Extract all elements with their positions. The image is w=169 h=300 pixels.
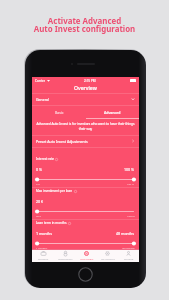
staticText: Advanced bbox=[104, 110, 121, 115]
button[interactable]: funding bbox=[118, 249, 139, 262]
button[interactable]: General bbox=[32, 93, 139, 105]
staticText: 100 % bbox=[124, 167, 135, 172]
staticText: Overview bbox=[74, 85, 97, 92]
button[interactable]: Auto Invest bbox=[76, 249, 97, 262]
staticText: Basic bbox=[55, 110, 64, 115]
staticText: investments bbox=[58, 257, 73, 260]
staticText: 100 % bbox=[127, 182, 135, 185]
staticText: 2:15 PM bbox=[84, 79, 96, 83]
staticText: my account bbox=[101, 257, 115, 260]
staticText: funding bbox=[124, 257, 134, 260]
staticText: 1000 € bbox=[127, 214, 135, 217]
staticText: Interest rate bbox=[36, 157, 54, 161]
staticText: Max investment per loan bbox=[36, 189, 73, 193]
staticText: Carrier bbox=[35, 79, 46, 83]
staticText: 20 € bbox=[36, 214, 41, 217]
staticText: 48 months bbox=[122, 246, 135, 249]
staticText: 48 months bbox=[116, 231, 135, 236]
button[interactable]: Basic bbox=[32, 105, 86, 119]
staticText: 0 % bbox=[36, 182, 41, 185]
staticText: Activate Advanced Auto Invest configurat… bbox=[0, 16, 169, 35]
staticText: Auto Invest bbox=[80, 257, 94, 260]
staticText: 0 % bbox=[36, 167, 42, 172]
button[interactable]: my account bbox=[97, 249, 118, 262]
staticText: General bbox=[36, 97, 49, 102]
button[interactable]: Preset Auto Invest Adjustments bbox=[32, 135, 139, 147]
staticText: Preset Auto Invest Adjustments bbox=[36, 139, 88, 144]
staticText: Advanced Auto Invest is for investors wh… bbox=[36, 122, 135, 131]
button[interactable]: portfolio bbox=[32, 249, 54, 262]
staticText: 1 months bbox=[36, 231, 52, 236]
staticText: Loan term in months bbox=[36, 221, 67, 225]
staticText: portfolio bbox=[38, 257, 49, 260]
button[interactable]: Advanced bbox=[86, 105, 139, 119]
staticText: 1 months bbox=[36, 246, 48, 249]
staticText: 20 € bbox=[36, 199, 44, 204]
button[interactable]: investments bbox=[54, 249, 76, 262]
